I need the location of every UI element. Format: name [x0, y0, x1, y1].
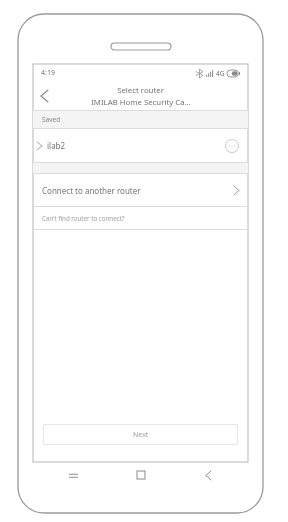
staticText: Select router	[117, 85, 164, 96]
button[interactable]: Connect to another router	[33, 174, 248, 206]
button[interactable]: Back	[33, 85, 55, 107]
staticText: Connect to another router	[42, 185, 141, 196]
button[interactable]: Recent apps	[64, 466, 82, 484]
staticText: Saved	[42, 115, 61, 124]
staticText: Can't find router to connect?	[42, 214, 125, 222]
button[interactable]: More options	[225, 139, 239, 153]
button[interactable]: Back	[199, 466, 217, 484]
staticText: ilab2	[47, 140, 66, 151]
staticText: IMILAB Home Security Ca...	[91, 97, 191, 108]
button[interactable]: ilab2	[33, 129, 248, 162]
staticText: 4:19	[41, 68, 55, 78]
staticText: 4G	[216, 69, 225, 78]
button[interactable]: Home	[132, 466, 150, 484]
staticText: Next	[133, 430, 149, 440]
button[interactable]: Next	[43, 424, 238, 445]
